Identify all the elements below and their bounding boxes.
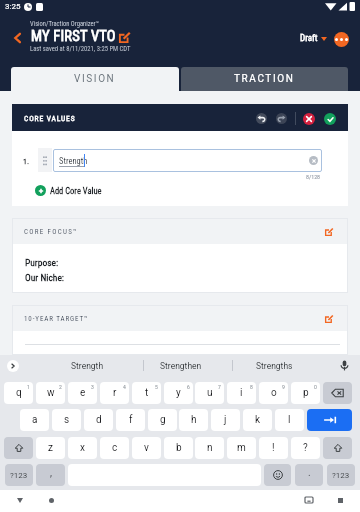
staticText: a (32, 414, 38, 426)
button[interactable]: r (100, 382, 129, 404)
staticText: p (303, 387, 309, 399)
button[interactable]: Home (42, 491, 60, 509)
button[interactable]: Backspace (323, 382, 352, 404)
staticText: CORE VALUES (24, 114, 76, 123)
button[interactable]: Edit ten year target (325, 315, 333, 323)
button[interactable]: Edit title (119, 32, 130, 43)
staticText: x (80, 442, 85, 454)
button[interactable]: Strength (53, 149, 322, 172)
staticText: VISION (74, 73, 116, 85)
button[interactable]: x (68, 437, 97, 459)
button[interactable]: Shift (323, 437, 352, 459)
staticText: o (271, 387, 277, 399)
staticText: n (207, 442, 213, 454)
button[interactable]: q (4, 382, 33, 404)
button[interactable]: g (148, 409, 177, 431)
button[interactable]: Back (11, 491, 29, 509)
staticText: 4 (123, 384, 126, 390)
button[interactable]: l (275, 409, 304, 431)
button[interactable]: ?123 (327, 464, 355, 486)
button[interactable]: Shift (4, 437, 33, 459)
staticText: z (48, 442, 53, 454)
button[interactable]: Draft (296, 31, 331, 46)
button[interactable]: Emoji (264, 464, 291, 486)
staticText: y (176, 387, 181, 399)
staticText: 1 (27, 384, 30, 390)
staticText: 3 (91, 384, 94, 390)
button[interactable]: ? (291, 437, 320, 459)
button[interactable]: k (243, 409, 272, 431)
staticText: 7 (218, 384, 221, 390)
staticText: i (240, 387, 243, 399)
button[interactable]: o (259, 382, 288, 404)
staticText: CORE FOCUS™ (24, 228, 79, 236)
staticText: Strength (71, 361, 104, 371)
staticText: 0 (314, 384, 317, 390)
button[interactable]: Keyboard (300, 491, 318, 509)
button[interactable]: Back (10, 30, 26, 46)
staticText: Add Core Value (50, 186, 102, 196)
staticText: ? (303, 442, 308, 454)
button[interactable]: e (68, 382, 97, 404)
staticText: 5 (155, 384, 158, 390)
button[interactable]: i (227, 382, 256, 404)
button[interactable]: m (227, 437, 256, 459)
button[interactable]: Redo (276, 113, 287, 124)
staticText: c (112, 442, 118, 454)
button[interactable]: ! (259, 437, 288, 459)
button[interactable]: Voice input (338, 359, 351, 372)
staticText: Our Niche: (25, 272, 65, 283)
button[interactable]: y (164, 382, 193, 404)
staticText: w (47, 387, 55, 399)
staticText: ?123 (332, 471, 350, 480)
button[interactable]: b (164, 437, 193, 459)
staticText: 1. (23, 157, 30, 166)
staticText: r (113, 387, 117, 399)
staticText: 8/128 (306, 173, 321, 180)
staticText: q (16, 387, 22, 399)
button[interactable]: n (195, 437, 224, 459)
button[interactable]: Strengthen (137, 355, 225, 376)
staticText: Vision/Traction Organizer™ (30, 20, 100, 28)
button[interactable]: Strengths (234, 355, 314, 376)
staticText: f (129, 414, 133, 426)
button[interactable]: . (295, 464, 323, 486)
button[interactable]: Next (307, 409, 352, 431)
button[interactable]: u (195, 382, 224, 404)
staticText: TRACTION (234, 73, 295, 85)
button[interactable]: VISION (11, 67, 179, 91)
button[interactable]: TRACTION (181, 67, 348, 91)
button[interactable]: Expand suggestions (7, 360, 19, 372)
button[interactable]: t (132, 382, 161, 404)
button[interactable]: Edit core focus (325, 228, 333, 236)
button[interactable]: Cancel (303, 113, 315, 125)
button[interactable]: v (132, 437, 161, 459)
staticText: 2 (59, 384, 62, 390)
button[interactable]: s (52, 409, 81, 431)
button[interactable]: c (100, 437, 129, 459)
staticText: k (255, 414, 261, 426)
button[interactable]: h (179, 409, 208, 431)
staticText: l (288, 414, 291, 426)
button[interactable]: ?123 (5, 464, 33, 486)
button[interactable]: Undo (256, 113, 267, 124)
button[interactable]: a (20, 409, 49, 431)
button[interactable]: Strength (28, 355, 147, 376)
button[interactable]: , (36, 464, 65, 486)
staticText: MY FIRST VTO (31, 28, 116, 45)
button[interactable]: More options (334, 32, 349, 47)
button[interactable]: w (36, 382, 65, 404)
staticText: g (160, 414, 166, 426)
button[interactable]: j (211, 409, 240, 431)
button[interactable]: Recents (331, 491, 349, 509)
button[interactable]: f (116, 409, 145, 431)
button[interactable]: Add Core Value (33, 183, 104, 198)
button[interactable]: z (36, 437, 65, 459)
staticText: u (207, 387, 213, 399)
button[interactable]: Save (324, 113, 336, 125)
staticText: ?123 (10, 471, 28, 480)
button[interactable]: d (84, 409, 113, 431)
button[interactable]: p (291, 382, 320, 404)
button[interactable]: Reorder (38, 148, 52, 172)
